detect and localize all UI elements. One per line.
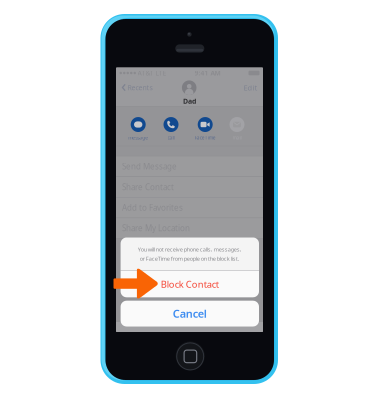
staticText: Add to Favorites bbox=[122, 202, 183, 213]
staticText: 9:41 AM bbox=[194, 69, 220, 77]
button[interactable]: FaceTime bbox=[188, 116, 222, 142]
button[interactable]: Recents bbox=[118, 80, 155, 95]
button[interactable]: mail bbox=[220, 116, 254, 142]
staticText: LTE bbox=[155, 69, 166, 77]
button[interactable]: Block Contact bbox=[121, 271, 259, 297]
staticText: Edit bbox=[243, 82, 257, 93]
button[interactable]: Cancel bbox=[121, 301, 259, 326]
staticText: Block Contact bbox=[161, 278, 219, 290]
staticText: message bbox=[128, 134, 148, 141]
staticText: Recents bbox=[127, 83, 152, 92]
button[interactable]: Edit bbox=[240, 80, 260, 95]
button[interactable]: call bbox=[154, 116, 188, 142]
staticText: Send Message bbox=[122, 161, 177, 172]
staticText: or FaceTime from people on the block lis… bbox=[140, 255, 240, 262]
button[interactable]: message bbox=[121, 116, 155, 142]
staticText: You will not receive phone calls, messag… bbox=[138, 246, 242, 253]
staticText: FaceTime bbox=[195, 134, 216, 141]
staticText: Dad bbox=[183, 96, 196, 106]
staticText: Share My Location bbox=[122, 223, 190, 234]
button[interactable]: Share My Location bbox=[116, 218, 263, 238]
staticText: Cancel bbox=[173, 306, 207, 321]
staticText: call bbox=[167, 134, 174, 141]
staticText: AT&T bbox=[137, 69, 153, 77]
staticText: Share Contact bbox=[122, 182, 174, 192]
